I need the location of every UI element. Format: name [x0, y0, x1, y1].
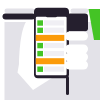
button[interactable]: Hand holding phone checklist illustratio…: [0, 0, 100, 100]
